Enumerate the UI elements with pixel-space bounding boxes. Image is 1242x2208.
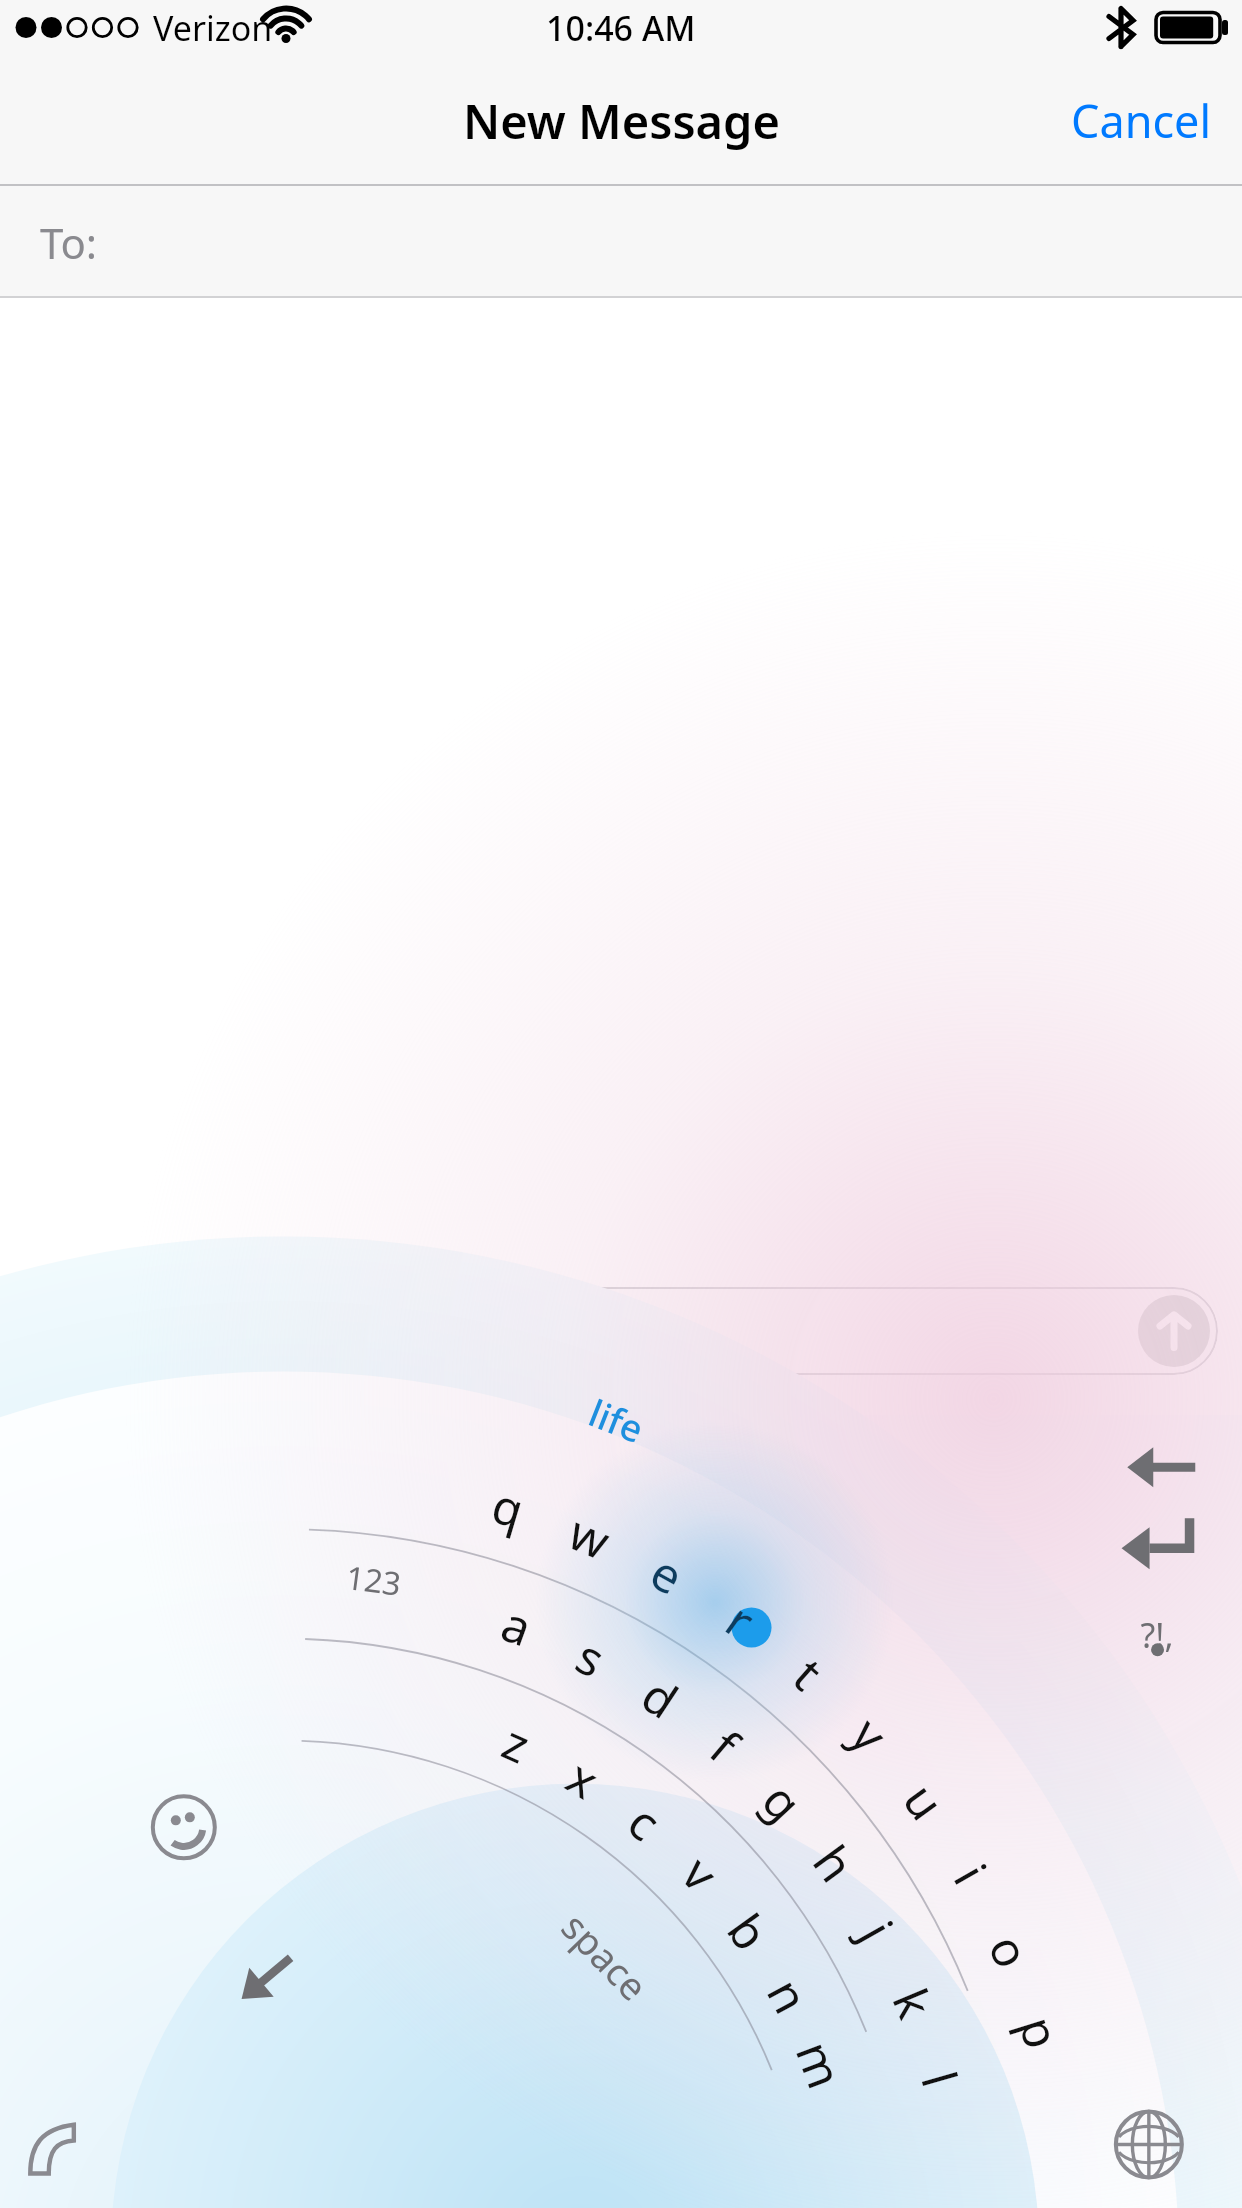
button[interactable]: Backspace: [1126, 1441, 1222, 1513]
button[interactable]: To:: [0, 186, 1242, 298]
staticText: Cancel: [1071, 90, 1212, 151]
button[interactable]: Keyboard layout: [12, 2100, 96, 2184]
button[interactable]: space: [461, 1878, 781, 1998]
button[interactable]: Swipe for: [130, 1287, 1218, 1375]
button[interactable]: Send: [1138, 1295, 1210, 1367]
button[interactable]: Switch language: [1122, 2098, 1206, 2182]
staticText: 10:46 AM: [546, 5, 696, 51]
staticText: New Message: [463, 89, 780, 153]
button[interactable]: Shift: [218, 1943, 298, 2013]
button[interactable]: Cancel: [1041, 70, 1242, 171]
staticText: Verizon: [153, 5, 273, 51]
button[interactable]: Punctuation: [1126, 1597, 1222, 1683]
staticText: To:: [40, 214, 98, 271]
button[interactable]: Return: [1126, 1521, 1222, 1597]
button[interactable]: Emoji: [148, 1793, 224, 1869]
